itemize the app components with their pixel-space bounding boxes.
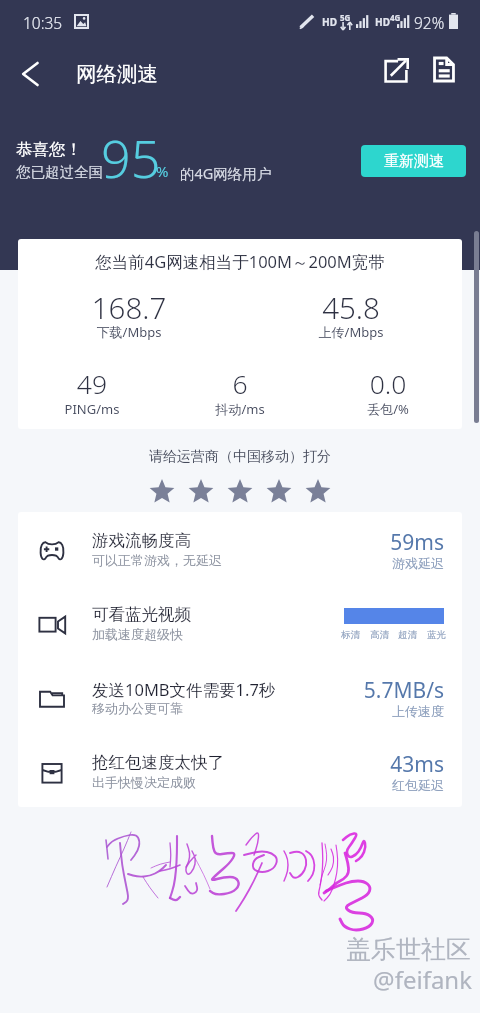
staticText: 超清 [398, 629, 417, 641]
staticText: 92% [414, 12, 445, 33]
button[interactable]: Rate 1 stars [149, 478, 175, 504]
button[interactable]: Rate 2 stars [188, 478, 214, 504]
staticText: 红包延迟 [244, 777, 444, 793]
button[interactable]: Rate 4 stars [266, 478, 292, 504]
staticText: HD [322, 15, 337, 29]
staticText: 高清 [370, 629, 389, 641]
staticText: 上传/Mbps [240, 323, 462, 341]
button[interactable]: Rate 5 stars [305, 478, 331, 504]
staticText: 可以正常游戏，无延迟 [92, 552, 222, 568]
staticText: 标清 [341, 629, 360, 641]
staticText: 6 [166, 366, 314, 402]
button[interactable]: Rate 3 stars [227, 478, 253, 504]
button[interactable]: Document [421, 46, 467, 92]
staticText: 45.8 [240, 287, 462, 327]
staticText: 抢红包速度太快了 [92, 752, 224, 773]
staticText: 10:35 [23, 12, 63, 33]
button[interactable]: Share [373, 47, 419, 93]
staticText: 重新测速 [384, 152, 444, 171]
button[interactable]: 游戏流畅度高 [18, 512, 462, 586]
button[interactable]: 重新测速 [361, 145, 466, 177]
staticText: 59ms [244, 528, 444, 557]
staticText: HD [375, 15, 390, 29]
staticText: 抖动/ms [166, 400, 314, 418]
button[interactable]: 发送10MB文件需要1.7秒 [18, 660, 462, 734]
staticText: 出手快慢决定成败 [92, 774, 196, 790]
staticText: 恭喜您！ [16, 139, 82, 160]
staticText: 5G [340, 12, 351, 23]
staticText: 游戏流畅度高 [92, 530, 191, 551]
staticText: 5.7MB/s [244, 676, 444, 705]
staticText: 网络测速 [76, 61, 158, 87]
staticText: 您当前4G网速相当于100M～200M宽带 [18, 250, 462, 273]
button[interactable]: Back [6, 50, 54, 98]
staticText: 上传速度 [244, 703, 444, 719]
staticText: 49 [18, 366, 166, 402]
staticText: 发送10MB文件需要1.7秒 [92, 678, 276, 701]
staticText: 168.7 [18, 287, 240, 327]
staticText: 下载/Mbps [18, 323, 240, 341]
staticText: 请给运营商（中国移动）打分 [0, 448, 480, 466]
button[interactable]: 抢红包速度太快了 [18, 734, 462, 807]
staticText: 加载速度超级快 [92, 626, 183, 642]
staticText: 43ms [244, 750, 444, 779]
staticText: 0.0 [314, 366, 462, 402]
staticText: 移动办公更可靠 [92, 700, 183, 716]
staticText: 95 [101, 122, 161, 193]
staticText: 丢包/% [314, 400, 462, 418]
staticText: % [156, 161, 169, 181]
staticText: 盖乐世社区 [0, 934, 471, 965]
staticText: 4G [390, 12, 401, 23]
staticText: 您已超过全国 [16, 163, 103, 181]
staticText: 游戏延迟 [244, 555, 444, 571]
staticText: PING/ms [18, 400, 166, 418]
staticText: 可看蓝光视频 [92, 604, 191, 625]
staticText: @feifank [0, 963, 472, 996]
staticText: 蓝光 [427, 629, 446, 641]
button[interactable]: 可看蓝光视频 [18, 586, 462, 660]
staticText: 的4G网络用户 [180, 163, 272, 183]
